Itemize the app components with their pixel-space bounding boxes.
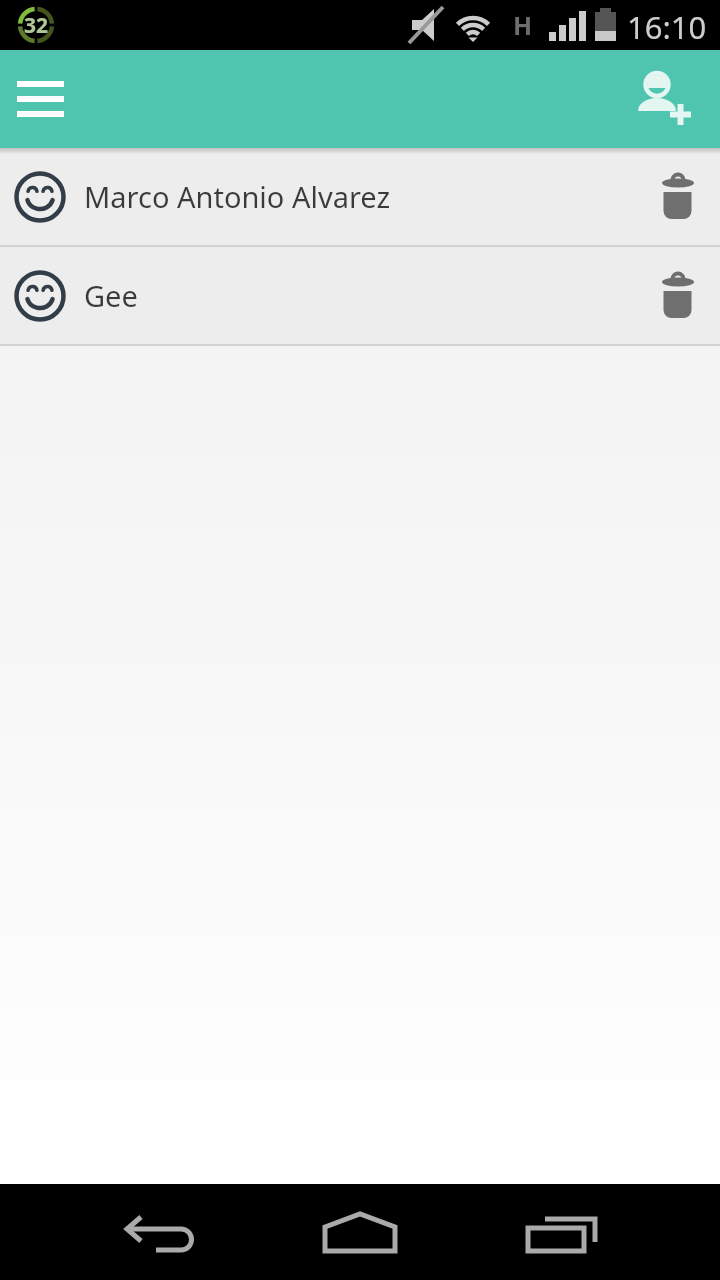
button[interactable] xyxy=(624,50,702,148)
staticText: 32 xyxy=(24,11,49,40)
button[interactable] xyxy=(60,1184,260,1280)
staticText: Gee xyxy=(84,276,138,315)
button[interactable] xyxy=(5,68,77,130)
button[interactable] xyxy=(636,247,720,344)
button[interactable]: Gee xyxy=(0,247,720,344)
staticText: H xyxy=(513,8,533,42)
button[interactable] xyxy=(260,1184,460,1280)
button[interactable] xyxy=(636,148,720,245)
button[interactable] xyxy=(460,1184,660,1280)
staticText: 16:10 xyxy=(627,6,707,48)
button[interactable]: Marco Antonio Alvarez xyxy=(0,148,720,245)
staticText: Marco Antonio Alvarez xyxy=(84,177,391,216)
